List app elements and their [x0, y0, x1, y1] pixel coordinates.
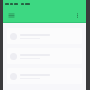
button[interactable]: List item 1 — [7, 28, 82, 44]
button[interactable]: Menu — [6, 10, 17, 21]
button[interactable]: More options — [72, 10, 83, 21]
button[interactable]: List item 2 — [7, 48, 82, 64]
button[interactable]: List item 3 — [7, 68, 82, 84]
